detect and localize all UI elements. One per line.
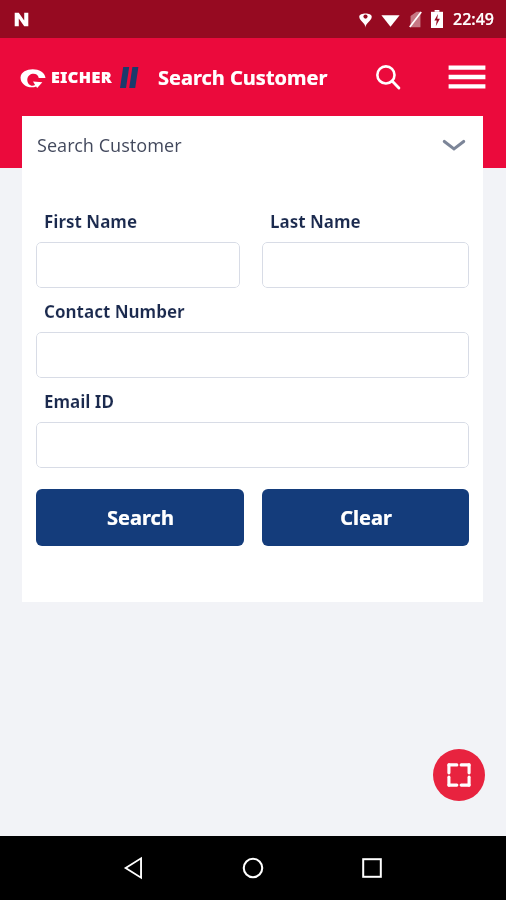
button[interactable]: Menu: [443, 53, 491, 101]
button[interactable]: Search: [36, 489, 244, 546]
button[interactable]: [36, 242, 240, 288]
staticText: Contact Number: [44, 300, 185, 323]
staticText: Search Customer: [37, 133, 443, 158]
button[interactable]: [262, 242, 469, 288]
staticText: Search: [107, 504, 174, 531]
staticText: First Name: [44, 210, 138, 233]
staticText: Search Customer: [158, 64, 328, 91]
button[interactable]: Clear: [262, 489, 469, 546]
staticText: 22:49: [453, 8, 494, 30]
staticText: EICHER: [51, 66, 113, 88]
staticText: Clear: [340, 504, 392, 531]
button[interactable]: [36, 422, 469, 468]
button[interactable]: Home: [229, 844, 277, 892]
staticText: Email ID: [44, 390, 114, 413]
button[interactable]: Scan: [433, 749, 485, 801]
staticText: Last Name: [270, 210, 361, 233]
button[interactable]: [36, 332, 469, 378]
button[interactable]: Search: [364, 53, 412, 101]
button[interactable]: Recent apps: [348, 844, 396, 892]
button[interactable]: Search Customer: [22, 116, 483, 174]
button[interactable]: Back: [110, 844, 158, 892]
